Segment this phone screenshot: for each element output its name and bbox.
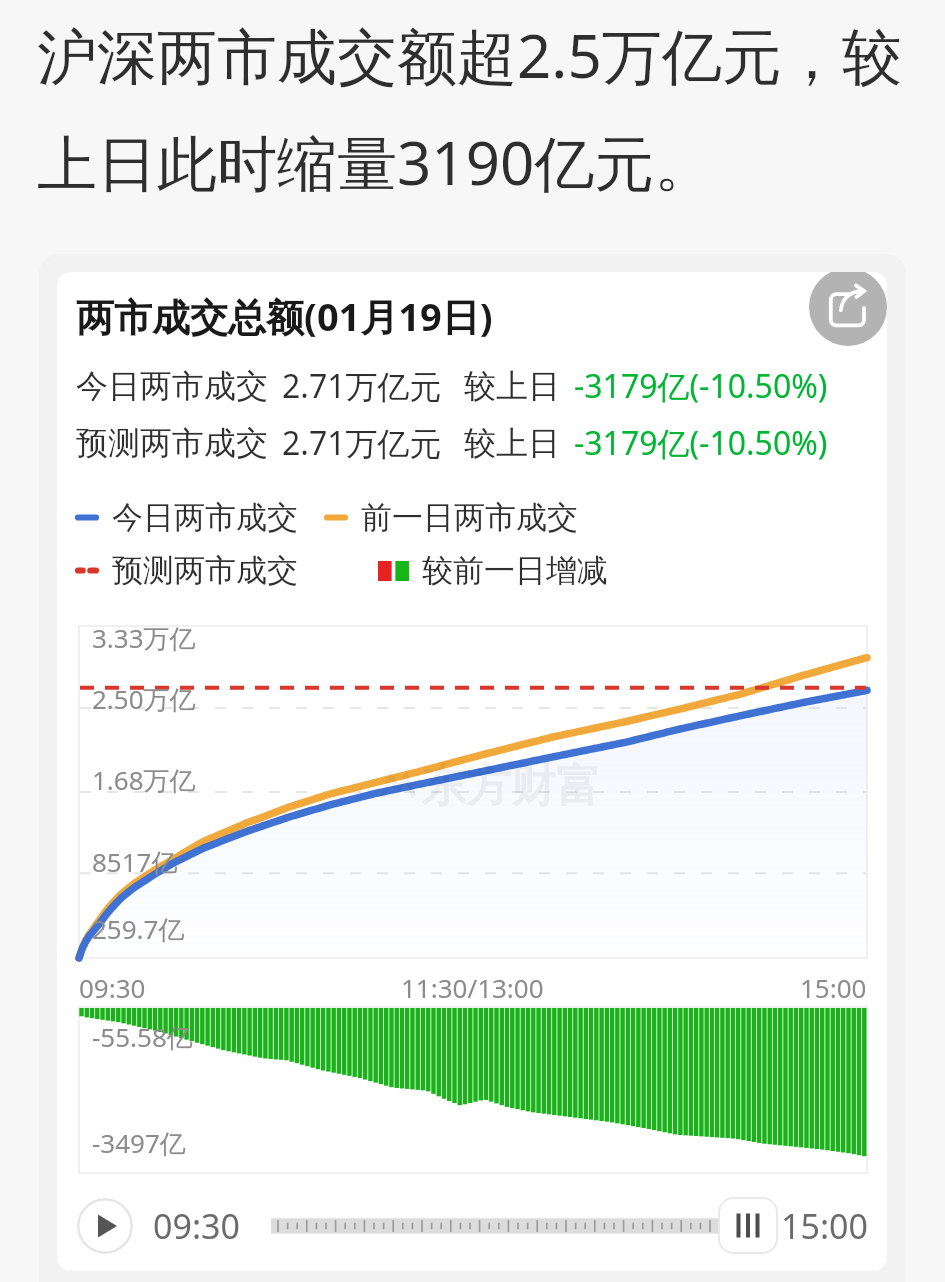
staticText: 2.71万亿元 [282,364,442,408]
staticText: -55.58亿 [92,1019,193,1055]
staticText: 2.50万亿 [92,681,196,717]
staticText: 前一日两市成交 [361,498,578,537]
staticText: 今日两市成交 [76,366,268,406]
staticText: 15:00 [800,970,867,1005]
staticText: 3.33万亿 [92,620,196,656]
staticText: 259.7亿 [92,911,185,947]
staticText: -3497亿 [92,1125,186,1161]
staticText: 预测两市成交 [112,551,298,590]
staticText: 两市成交总额(01月19日) [76,290,493,342]
button[interactable]: Pause [718,1197,778,1254]
staticText: 2.71万亿元 [282,421,442,465]
staticText: 较上日 [464,366,560,406]
button[interactable]: Play [77,1198,133,1254]
staticText: 东方财富 [421,758,601,815]
button[interactable]: Share [809,272,887,346]
staticText: 较前一日增减 [422,551,608,590]
staticText: 09:30 [79,970,146,1005]
staticText: 09:30 [153,1203,240,1249]
staticText: 沪深两市成交额超2.5万亿元，较上日此时缩量3190亿元。 [37,14,929,203]
staticText: 1.68万亿 [92,762,196,798]
staticText: -3179亿(-10.50%) [574,364,828,408]
staticText: 预测两市成交 [76,423,268,463]
staticText: 较上日 [464,423,560,463]
staticText: 8517亿 [92,844,178,880]
staticText: 今日两市成交 [112,498,298,537]
staticText: -3179亿(-10.50%) [574,421,828,465]
staticText: 15:00 [781,1203,868,1249]
staticText: 11:30/13:00 [401,970,544,1005]
